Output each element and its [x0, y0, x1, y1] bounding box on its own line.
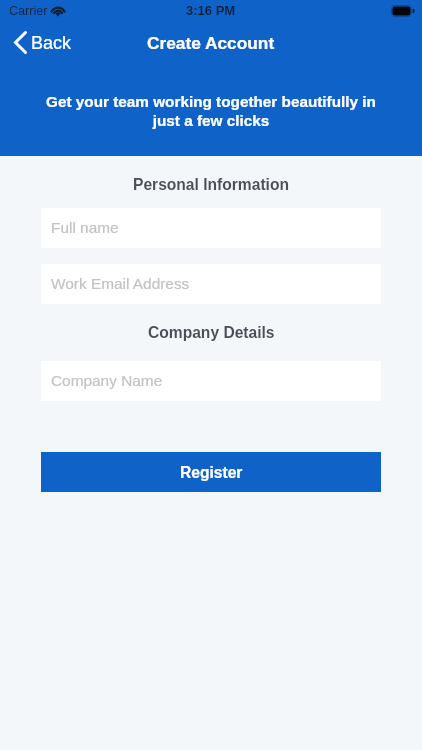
other: Battery full	[391, 5, 415, 17]
staticText: Register	[180, 464, 243, 481]
staticText: 3:16 PM	[186, 3, 236, 18]
staticText: Back	[31, 33, 72, 53]
button[interactable]: Full name	[41, 208, 381, 248]
button[interactable]: Register	[41, 452, 381, 492]
button[interactable]: Work Email Address	[41, 264, 381, 304]
staticText: Company Details	[148, 324, 275, 341]
staticText: Create Account	[147, 33, 275, 52]
staticText: Get your team working together beautiful…	[36, 93, 386, 129]
other: Wi-Fi signal	[50, 4, 66, 16]
staticText: Personal Information	[133, 176, 289, 193]
staticText: Carrier	[9, 4, 48, 18]
staticText: Full name	[51, 219, 119, 236]
staticText: Company Name	[51, 372, 163, 389]
button[interactable]: Company Name	[41, 361, 381, 401]
button[interactable]: Back	[0, 25, 82, 60]
staticText: Work Email Address	[51, 275, 190, 292]
